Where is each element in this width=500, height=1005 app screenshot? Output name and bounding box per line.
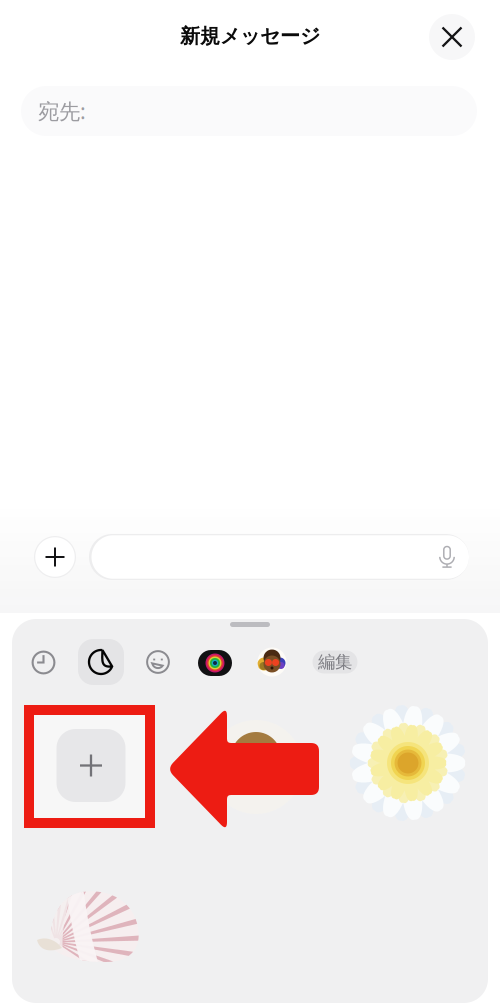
button[interactable]: Photo stickers xyxy=(254,644,290,680)
button[interactable]: Recents xyxy=(25,644,61,680)
staticText: 編集 xyxy=(318,651,352,673)
button[interactable]: Emoji xyxy=(140,644,176,680)
button[interactable]: Close xyxy=(429,14,475,60)
button[interactable]: Create sticker xyxy=(56,729,125,802)
button[interactable]: 編集 xyxy=(312,650,357,673)
button[interactable]: Memoji xyxy=(196,644,234,682)
staticText: 宛先: xyxy=(38,97,86,125)
button[interactable]: Stickers xyxy=(78,639,124,685)
button[interactable]: Add media xyxy=(34,536,76,578)
button[interactable]: 宛先: xyxy=(21,86,477,136)
button[interactable]: Message field xyxy=(89,534,469,580)
staticText: 新規メッセージ xyxy=(180,24,320,48)
